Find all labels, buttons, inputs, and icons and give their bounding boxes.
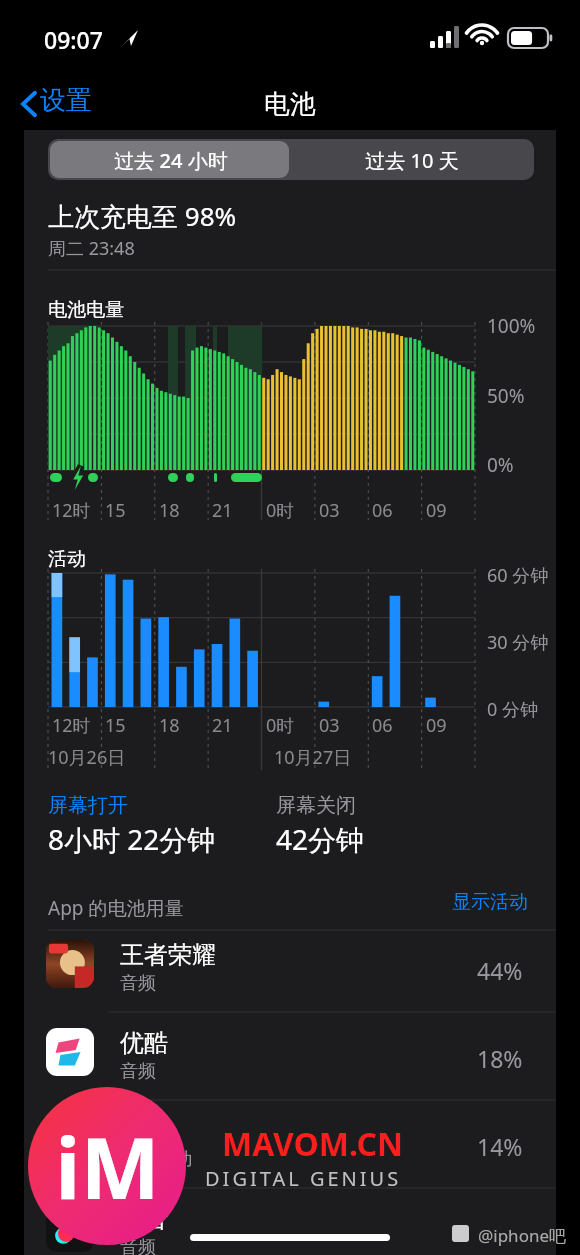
staticText: 电池电量 [48,298,124,322]
staticText: 音频 [120,972,156,995]
staticText: 10月26日 [48,745,126,770]
button[interactable] [24,930,556,1012]
staticText: DIGITAL GENIUS [205,1165,402,1192]
staticText: 过去 24 小时 [114,147,228,174]
staticText: 优酷 [120,1028,168,1058]
staticText: 18% [477,1043,523,1074]
staticText: 09:07 [44,24,103,55]
staticText: 音频 [120,1060,156,1083]
staticText: 12时 [52,713,91,738]
staticText: 屏幕关闭 [276,793,356,818]
staticText: 抖音 [120,1204,168,1234]
staticText: 06 [372,498,393,523]
staticText: 09 [426,498,447,523]
button[interactable] [24,1100,556,1188]
staticText: 42分钟 [276,820,365,858]
staticText: 14% [477,1131,523,1162]
staticText: 18 [159,498,180,523]
staticText: 屏幕打开 [48,793,128,818]
staticText: 活动 [48,547,86,571]
button[interactable] [24,1188,556,1248]
button[interactable]: Back [14,84,44,124]
staticText: MAVOM.CN [222,1122,403,1166]
staticText: 过去 10 天 [365,147,459,174]
staticText: 周二 23:48 [48,236,135,261]
staticText: 后台活动 [120,1148,192,1171]
staticText: @iphone吧 [478,1224,567,1247]
staticText: 03 [319,498,340,523]
staticText: 21 [212,498,233,523]
staticText: 0时 [266,498,295,523]
staticText: 44% [477,955,523,986]
staticText: 10月27日 [274,745,352,770]
staticText: 上次充电至 98% [48,198,237,234]
button[interactable]: 设置 [40,84,92,124]
staticText: 电池 [264,88,316,121]
staticText: 100% [487,313,536,339]
staticText: 15 [105,713,126,738]
button[interactable]: 显示活动 [452,890,536,920]
staticText: 0% [487,452,514,478]
staticText: App 的电池用量 [48,895,184,921]
staticText: 50% [487,383,525,409]
staticText: 30 分钟 [487,630,549,655]
staticText: iM [55,1109,160,1223]
staticText: 0时 [266,713,295,738]
staticText: 18 [159,713,180,738]
staticText: 15 [105,498,126,523]
button[interactable] [24,1012,556,1100]
staticText: 8小时 22分钟 [48,820,216,858]
staticText: 03 [319,713,340,738]
staticText: 设置 [40,84,92,117]
staticText: 06 [372,713,393,738]
staticText: 音频 [120,1236,156,1255]
staticText: 王者荣耀 [120,940,216,970]
staticText: 60 分钟 [487,563,549,588]
staticText: 12时 [52,498,91,523]
staticText: 0 分钟 [487,697,538,722]
staticText: 21 [212,713,233,738]
staticText: 显示活动 [452,890,528,914]
staticText: 09 [426,713,447,738]
